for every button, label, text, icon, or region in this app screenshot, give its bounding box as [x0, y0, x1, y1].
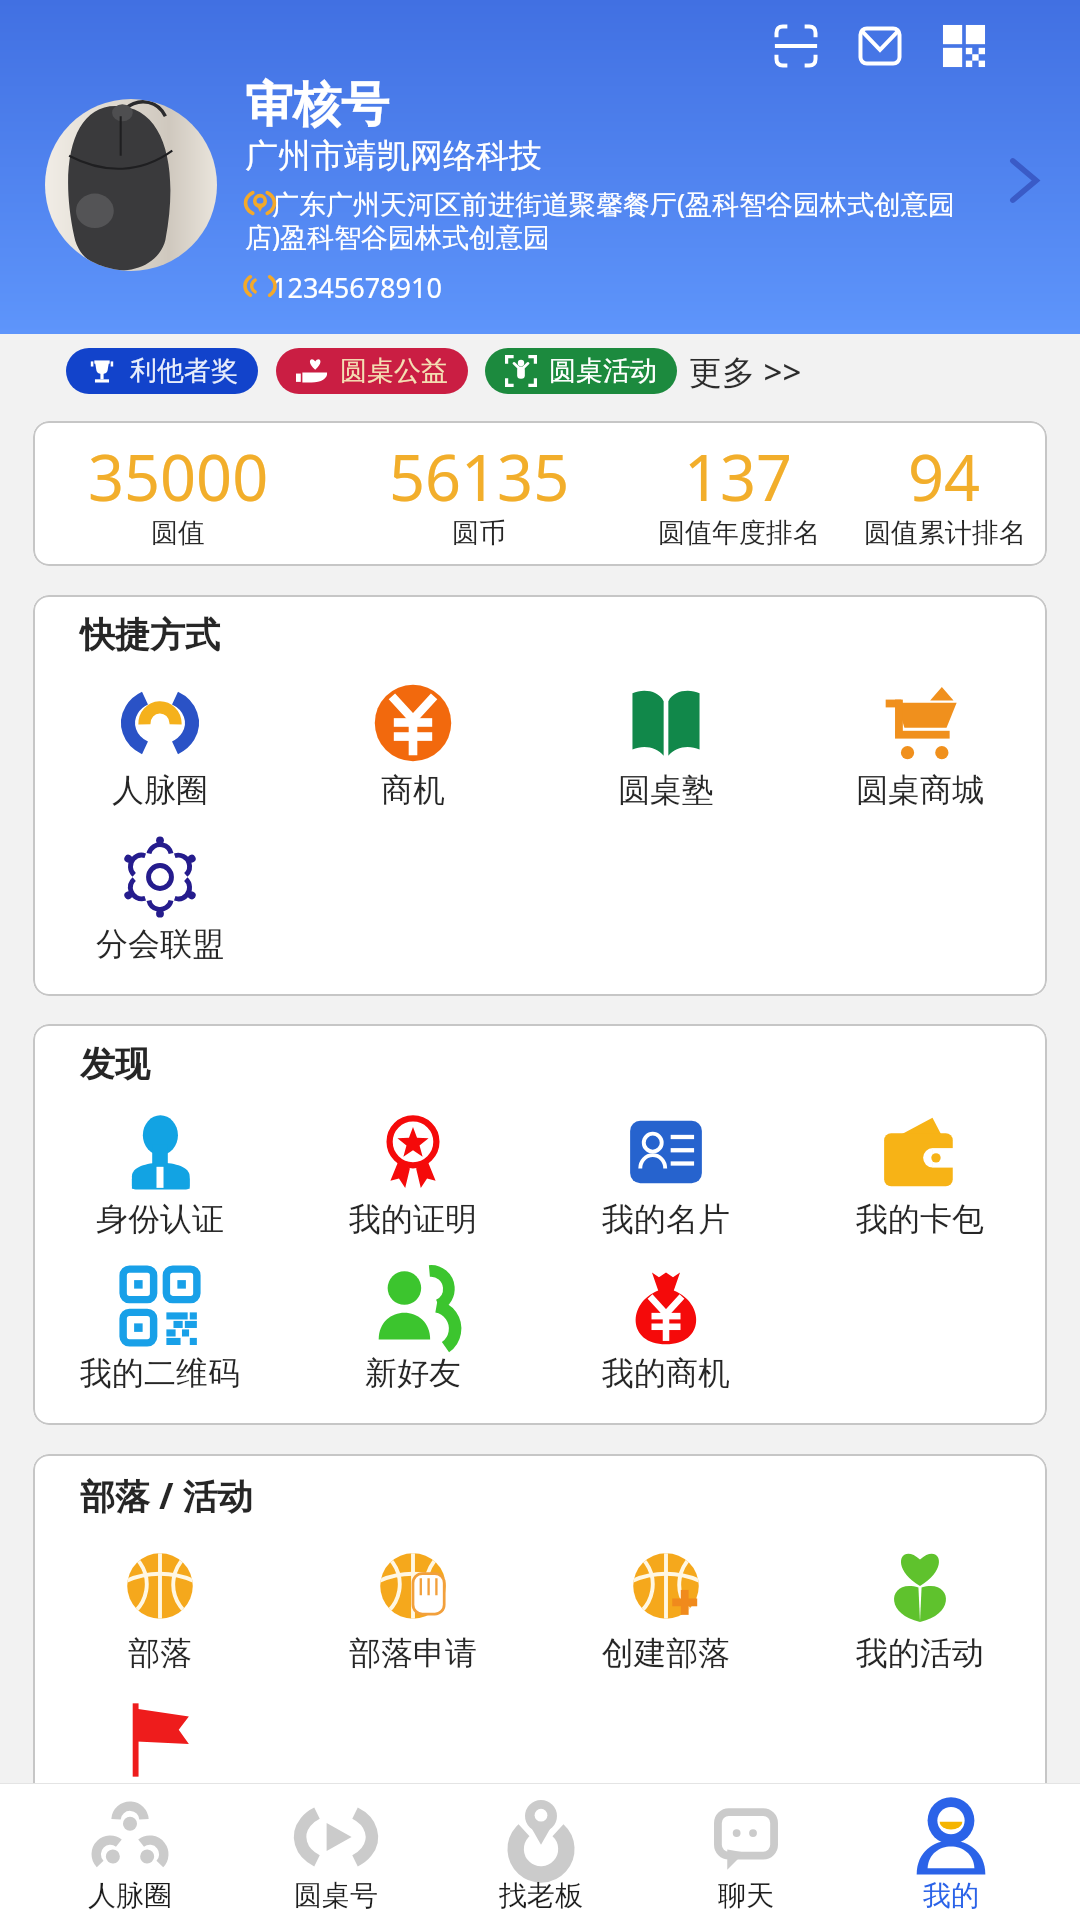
button[interactable]: 我的证明: [286, 1113, 539, 1267]
staticText: 部落: [128, 1633, 192, 1673]
button[interactable]: 部落申请: [286, 1547, 539, 1701]
staticText: 审核号: [245, 75, 389, 135]
staticText: 广州市靖凯网络科技: [245, 135, 542, 177]
button[interactable]: 我的卡包: [793, 1113, 1047, 1267]
button[interactable]: 更多 >>: [685, 341, 806, 402]
staticText: 部落申请: [349, 1633, 477, 1673]
button[interactable]: 圆桌活动: [485, 348, 677, 394]
staticText: 圆桌塾: [618, 770, 714, 810]
button[interactable]: 利他者奖: [66, 348, 258, 394]
button[interactable]: 我的二维码: [33, 1267, 286, 1421]
staticText: 圆值年度排名: [658, 516, 820, 550]
staticText: 我的商机: [602, 1353, 730, 1393]
staticText: 我的名片: [602, 1199, 730, 1239]
staticText: 137: [684, 434, 793, 520]
button[interactable]: 35000: [33, 421, 323, 566]
button[interactable]: 56135: [323, 421, 635, 566]
staticText: 我的二维码: [80, 1353, 240, 1393]
button[interactable]: 找老板: [438, 1784, 643, 1920]
staticText: 12345678910: [245, 269, 442, 306]
staticText: 圆币: [452, 516, 506, 550]
button[interactable]: QR code: [932, 14, 996, 78]
button[interactable]: 我的名片: [539, 1113, 793, 1267]
staticText: 圆桌商城: [856, 770, 984, 810]
staticText: 圆值: [151, 516, 205, 550]
staticText: 人脉圈: [88, 1878, 172, 1913]
button[interactable]: Messages: [848, 14, 912, 78]
button[interactable]: 94: [842, 421, 1047, 566]
staticText: 更多 >>: [689, 349, 802, 394]
button[interactable]: 我的商机: [539, 1267, 793, 1421]
staticText: 发现: [80, 1042, 150, 1086]
button[interactable]: 审核号: [0, 75, 1080, 306]
staticText: 找老板: [499, 1878, 583, 1913]
button[interactable]: 圆桌号: [233, 1784, 438, 1920]
staticText: 新好友: [365, 1353, 461, 1393]
staticText: 圆桌活动: [549, 354, 657, 388]
staticText: 快捷方式: [80, 613, 220, 657]
button[interactable]: 新好友: [286, 1267, 539, 1421]
button[interactable]: 我的: [848, 1784, 1053, 1920]
staticText: 分会联盟: [96, 924, 224, 964]
staticText: 我的卡包: [856, 1199, 984, 1239]
staticText: 创建部落: [602, 1633, 730, 1673]
button[interactable]: 活动旗帜: [33, 1701, 286, 1855]
staticText: 商机: [381, 770, 445, 810]
staticText: 聊天: [718, 1878, 774, 1913]
staticText: 圆桌公益: [340, 354, 448, 388]
staticText: 部落 / 活动: [80, 1472, 253, 1520]
button[interactable]: 人脉圈: [27, 1784, 233, 1920]
staticText: 人脉圈: [112, 770, 208, 810]
staticText: 利他者奖: [130, 354, 238, 388]
button[interactable]: 圆桌公益: [276, 348, 468, 394]
button[interactable]: 分会联盟: [33, 838, 286, 992]
staticText: 广东广州天河区前进街道聚馨餐厅(盈科智谷园林式创意园店)盈科智谷园林式创意园: [245, 185, 975, 255]
button[interactable]: 身份认证: [33, 1113, 286, 1267]
button[interactable]: 我的活动: [793, 1547, 1047, 1701]
button[interactable]: Open profile: [986, 142, 1063, 219]
staticText: 圆值累计排名: [864, 516, 1026, 550]
button[interactable]: 部落: [33, 1547, 286, 1701]
staticText: 94: [908, 434, 981, 520]
button[interactable]: 圆桌商城: [793, 684, 1047, 838]
button[interactable]: 人脉圈: [33, 684, 286, 838]
staticText: 身份认证: [96, 1199, 224, 1239]
staticText: 我的活动: [856, 1633, 984, 1673]
staticText: 圆桌号: [294, 1878, 378, 1913]
staticText: 我的: [923, 1878, 979, 1913]
button[interactable]: 聊天: [643, 1784, 848, 1920]
button[interactable]: 137: [635, 421, 842, 566]
button[interactable]: 创建部落: [539, 1547, 793, 1701]
button[interactable]: 商机: [286, 684, 539, 838]
staticText: 56135: [389, 434, 570, 520]
staticText: 我的证明: [349, 1199, 477, 1239]
button[interactable]: Scan: [764, 14, 828, 78]
button[interactable]: 圆桌塾: [539, 684, 793, 838]
staticText: 35000: [88, 434, 269, 520]
